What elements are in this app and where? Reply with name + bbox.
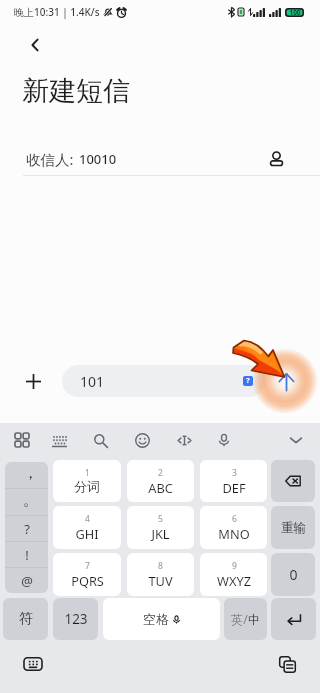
staticText: JKL: [151, 525, 170, 542]
staticText: 新建短信: [22, 74, 130, 108]
button[interactable]: Search: [87, 427, 113, 453]
staticText: !: [25, 546, 29, 564]
button[interactable]: 1: [53, 460, 121, 502]
button[interactable]: 8: [127, 553, 194, 596]
staticText: 重输: [281, 520, 306, 536]
staticText: 8: [158, 560, 163, 572]
staticText: DEF: [222, 479, 246, 496]
staticText: PQRS: [71, 572, 104, 589]
button[interactable]: ，: [5, 462, 48, 488]
button[interactable]: 收信人:: [0, 144, 320, 175]
staticText: ABC: [148, 479, 173, 496]
button[interactable]: Keyboard layout: [46, 427, 72, 453]
staticText: 收信人:: [26, 149, 74, 169]
staticText: 。: [23, 491, 38, 510]
button[interactable]: Add attachment: [19, 367, 47, 395]
staticText: 符: [19, 610, 33, 628]
staticText: GHI: [75, 525, 99, 542]
staticText: 3: [232, 467, 237, 479]
button[interactable]: Symbols: [3, 598, 48, 640]
button[interactable]: 4: [53, 506, 121, 549]
button[interactable]: Voice input: [211, 427, 237, 453]
button[interactable]: Move cursor: [171, 427, 197, 453]
button[interactable]: 5: [127, 506, 194, 549]
staticText: ?: [24, 520, 30, 538]
staticText: MNO: [218, 525, 250, 542]
button[interactable]: Send: [272, 367, 300, 395]
staticText: 英: [231, 612, 243, 627]
staticText: 9: [232, 560, 237, 572]
button[interactable]: @: [5, 568, 48, 593]
button[interactable]: ?: [5, 516, 48, 541]
button[interactable]: Language: [224, 598, 267, 640]
button[interactable]: Choose contact: [263, 146, 289, 172]
staticText: /: [243, 611, 248, 627]
button[interactable]: 0: [271, 553, 315, 596]
staticText: @: [21, 572, 33, 590]
button[interactable]: 6: [200, 506, 267, 549]
staticText: 1: [85, 467, 90, 479]
staticText: 晚上10:31 | 1.4K/s: [14, 5, 100, 19]
staticText: 5: [158, 513, 163, 525]
button[interactable]: 。: [5, 489, 48, 515]
staticText: 2: [158, 467, 163, 479]
button[interactable]: Emoji: [129, 427, 155, 453]
button[interactable]: Backspace: [271, 460, 315, 502]
button[interactable]: Hide keyboard: [283, 427, 309, 453]
staticText: 123: [64, 610, 88, 628]
staticText: 4: [85, 513, 90, 525]
button[interactable]: 101: [62, 365, 265, 397]
staticText: 0: [289, 565, 298, 584]
staticText: 101: [80, 372, 105, 391]
button[interactable]: 3: [200, 460, 267, 502]
staticText: ，: [23, 464, 38, 483]
button[interactable]: Recent apps: [273, 650, 301, 678]
staticText: TUV: [148, 572, 173, 589]
staticText: 中: [248, 612, 260, 627]
button[interactable]: Numbers: [53, 598, 98, 640]
button[interactable]: Enter: [271, 598, 316, 640]
staticText: ?: [246, 376, 250, 386]
staticText: 分词: [74, 479, 100, 495]
button[interactable]: 2: [127, 460, 194, 502]
button[interactable]: !: [5, 542, 48, 567]
staticText: 10010: [79, 150, 117, 168]
button[interactable]: Retype: [271, 506, 315, 549]
staticText: 7: [85, 560, 90, 572]
button[interactable]: Apps: [9, 427, 35, 453]
button[interactable]: Back: [21, 31, 49, 59]
staticText: WXYZ: [217, 572, 251, 589]
staticText: 空格: [143, 611, 169, 627]
button[interactable]: 9: [200, 553, 267, 596]
staticText: 6: [232, 513, 237, 525]
button[interactable]: 空格: [103, 598, 220, 640]
staticText: 100: [289, 8, 301, 17]
button[interactable]: 7: [53, 553, 121, 596]
button[interactable]: Show keyboard: [19, 650, 47, 678]
